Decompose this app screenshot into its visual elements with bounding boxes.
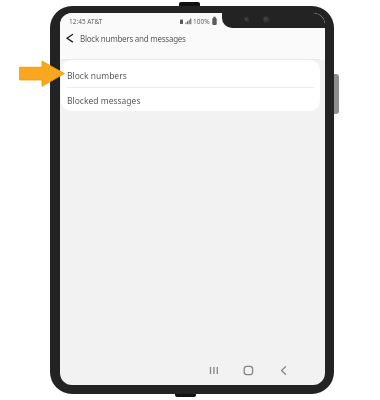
button[interactable]: Block numbers xyxy=(61,60,320,87)
staticText: Blocked messages xyxy=(67,95,141,107)
staticText: Block numbers xyxy=(67,70,127,82)
button[interactable]: Blocked messages xyxy=(61,87,320,111)
button[interactable] xyxy=(200,358,222,380)
button[interactable] xyxy=(272,358,294,380)
staticText: 100% xyxy=(193,17,210,26)
staticText: 12:45 AT&T xyxy=(69,17,103,26)
staticText: Block numbers and messages xyxy=(80,33,186,44)
button[interactable] xyxy=(237,358,259,380)
